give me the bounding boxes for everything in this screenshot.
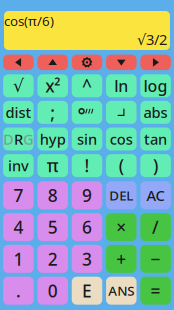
staticText: ! — [84, 154, 89, 177]
staticText: / — [152, 216, 159, 239]
staticText: hyp — [40, 129, 66, 149]
staticText: cos — [110, 129, 133, 149]
staticText: E — [82, 279, 92, 302]
staticText: 5 — [48, 216, 58, 239]
button[interactable]: π — [37, 154, 68, 177]
button[interactable]: 4 — [3, 213, 34, 241]
staticText: 4 — [13, 216, 23, 239]
staticText: 6 — [82, 216, 92, 239]
button[interactable]: Settings — [72, 55, 102, 70]
button[interactable]: 2 — [37, 245, 68, 273]
button[interactable]: 5 — [37, 213, 68, 241]
staticText: 3 — [82, 247, 92, 270]
button[interactable]: Move left — [3, 55, 34, 70]
button[interactable]: / — [140, 213, 171, 241]
button[interactable]: ! — [72, 154, 102, 177]
staticText: 7 — [13, 184, 23, 207]
staticText: tan — [144, 129, 167, 149]
staticText: log — [144, 75, 168, 96]
button[interactable]: AC — [140, 181, 171, 209]
button[interactable]: 0 — [37, 277, 68, 305]
staticText: 0 — [48, 279, 58, 302]
staticText: − — [151, 247, 161, 270]
button[interactable]: ANS — [106, 277, 136, 305]
staticText: 2 — [48, 247, 58, 270]
button[interactable]: 8 — [37, 181, 68, 209]
button[interactable]: ( — [106, 154, 136, 177]
staticText: + — [116, 247, 126, 270]
button[interactable]: Angle — [106, 101, 136, 124]
button[interactable]: hyp — [37, 127, 68, 150]
staticText: √3/2 — [137, 30, 167, 49]
button[interactable]: √ — [3, 74, 34, 97]
staticText: sin — [77, 129, 97, 149]
staticText: D — [3, 129, 14, 149]
button[interactable]: 6 — [72, 213, 102, 241]
staticText: ; — [50, 101, 55, 124]
button[interactable]: E — [72, 277, 102, 305]
button[interactable]: cos — [106, 127, 136, 150]
staticText: ln — [114, 75, 128, 96]
button[interactable]: abs — [140, 101, 171, 124]
button[interactable]: dist — [3, 101, 34, 124]
staticText: 1 — [13, 247, 23, 270]
button[interactable]: Move right — [140, 55, 171, 70]
button[interactable]: Move up — [37, 55, 68, 70]
staticText: AC — [147, 186, 165, 205]
button[interactable]: DEL — [106, 181, 136, 209]
button[interactable]: tan — [140, 127, 171, 150]
button[interactable]: Move down — [106, 55, 136, 70]
staticText: DEL — [109, 186, 133, 204]
button[interactable]: x² — [37, 74, 68, 97]
staticText: R — [14, 129, 23, 149]
button[interactable]: log — [140, 74, 171, 97]
button[interactable]: ; — [37, 101, 68, 124]
staticText: √ — [13, 76, 24, 96]
staticText: π — [47, 154, 59, 177]
button[interactable]: 7 — [3, 181, 34, 209]
button[interactable]: sin — [72, 127, 102, 150]
staticText: 9 — [82, 184, 92, 207]
staticText: inv — [8, 156, 29, 175]
button[interactable]: . — [3, 277, 34, 305]
staticText: ANS — [108, 282, 134, 299]
button[interactable]: ^ — [72, 74, 102, 97]
staticText: dist — [5, 103, 31, 122]
staticText: 8 — [48, 184, 58, 207]
staticText: x² — [45, 74, 60, 97]
button[interactable]: Degrees Radians Gradians mode — [3, 127, 34, 150]
staticText: ^ — [82, 74, 92, 97]
staticText: ) — [153, 154, 158, 177]
button[interactable]: 9 — [72, 181, 102, 209]
button[interactable]: Degrees minutes seconds — [72, 101, 102, 124]
staticText: cos(π/6) — [4, 12, 54, 30]
staticText: = — [151, 279, 161, 302]
button[interactable]: inv — [3, 154, 34, 177]
button[interactable]: ln — [106, 74, 136, 97]
button[interactable]: − — [140, 245, 171, 273]
button[interactable]: = — [140, 277, 171, 305]
button[interactable]: 1 — [3, 245, 34, 273]
staticText: × — [116, 216, 126, 239]
staticText: ( — [119, 154, 124, 177]
staticText: abs — [144, 103, 168, 122]
staticText: . — [16, 279, 21, 302]
staticText: G — [23, 129, 34, 149]
button[interactable]: ) — [140, 154, 171, 177]
button[interactable]: 3 — [72, 245, 102, 273]
button[interactable]: + — [106, 245, 136, 273]
button[interactable]: × — [106, 213, 136, 241]
